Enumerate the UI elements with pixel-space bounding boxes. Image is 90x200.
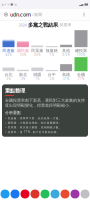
staticText: 31%: [63, 77, 69, 81]
staticText: / 新聞: [32, 12, 42, 17]
staticText: ✦: [4, 3, 6, 6]
staticText: ▮: [2, 3, 3, 6]
staticText: 2%: [6, 77, 10, 81]
staticText: 2%: [50, 77, 54, 81]
staticText: 26%: [34, 53, 40, 57]
button[interactable]: Pinterest: [20, 188, 30, 200]
staticText: ▤: [14, 3, 17, 6]
staticText: 得票率: [59, 22, 71, 27]
staticText: 其他: [62, 48, 70, 53]
staticText: 3%: [21, 77, 25, 81]
staticText: 國民黨: [17, 48, 29, 53]
staticText: 分析重點: [5, 110, 21, 115]
button[interactable]: Facebook: [10, 188, 20, 200]
staticText: 40%: [5, 53, 11, 57]
staticText: 總投票: [75, 48, 87, 53]
staticText: 國民黨：六都席次增加，地方版圖擴張。: [8, 121, 62, 125]
staticText: 桃園: [33, 72, 41, 77]
staticText: 高雄: [62, 72, 70, 77]
button[interactable]: Twitter: [0, 188, 10, 200]
button[interactable]: udn.com: [10, 9, 42, 20]
staticText: 無黨籍: [46, 48, 58, 53]
staticText: 1%: [35, 77, 39, 81]
button[interactable]: Instagram: [70, 188, 80, 200]
staticText: 全國: [77, 72, 85, 77]
button[interactable]: LINE: [40, 188, 50, 200]
staticText: 1%: [50, 53, 54, 57]
button[interactable]: More options: [80, 9, 88, 20]
staticText: 投票率：達 71%，創下近年最高紀錄。: [8, 130, 60, 134]
staticText: 民眾黨: [31, 48, 43, 53]
staticText: 新北: [19, 72, 27, 77]
staticText: 台北: [4, 72, 12, 77]
staticText: 71%: [78, 77, 84, 81]
staticText: 台中: [48, 72, 56, 77]
button[interactable]: Reddit: [30, 188, 40, 200]
button[interactable]: Email: [80, 188, 90, 200]
staticText: 2024: [18, 22, 26, 27]
staticText: ▃▅: [79, 3, 83, 6]
staticText: 民眾黨：首次進入國會，成為關鍵少數。: [8, 126, 62, 129]
staticText: 0.6%: [63, 53, 70, 57]
button[interactable]: Share: [60, 188, 70, 200]
staticText: 多黨之戰結果: [28, 22, 58, 28]
staticText: udn.com: [10, 11, 31, 18]
staticText: ✉: [7, 3, 9, 6]
staticText: 全國投票率創下新高，選民對三大政黨的支持度出現明顯變化，得票差距明顯縮小。: [5, 98, 85, 108]
staticText: 民進黨：得票率下滑，但仍為第一大黨。: [8, 117, 62, 120]
staticText: 100%: [77, 53, 85, 57]
staticText: 33%: [20, 53, 26, 57]
button[interactable]: Site information: [2, 9, 10, 20]
button[interactable]: Telegram: [50, 188, 60, 200]
staticText: 重點整理: [5, 87, 25, 94]
staticText: 民進黨: [2, 48, 14, 53]
